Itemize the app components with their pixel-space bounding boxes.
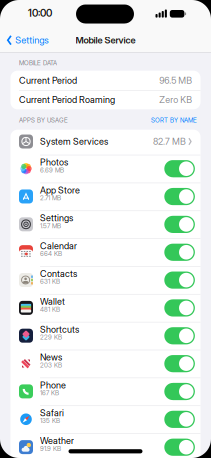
- staticText: Shortcuts: [40, 324, 79, 335]
- button[interactable]: S O R T B Y N A M E: [107, 115, 197, 125]
- staticText: Settings: [40, 212, 73, 223]
- staticText: 167 KB: [40, 389, 59, 397]
- button[interactable]: Settings: [164, 216, 195, 233]
- button[interactable]: Safari: [164, 411, 195, 428]
- button[interactable]: Calendar: [164, 244, 195, 261]
- staticText: 664 KB: [40, 250, 62, 257]
- staticText: 229 KB: [40, 333, 62, 341]
- staticText: Weather: [40, 435, 74, 446]
- staticText: 2.71 MB: [40, 194, 61, 202]
- staticText: 96.5 MB: [159, 75, 192, 86]
- staticText: 10:00: [28, 7, 52, 19]
- staticText: News: [40, 352, 62, 363]
- button[interactable]: News: [164, 355, 195, 372]
- staticText: Calendar: [40, 240, 77, 251]
- staticText: Photos: [40, 157, 68, 168]
- staticText: 203 KB: [40, 361, 62, 369]
- button[interactable]: Phone: [164, 383, 195, 400]
- staticText: App Store: [40, 185, 80, 196]
- staticText: 82.7 MB: [153, 136, 186, 147]
- staticText: 481 KB: [40, 305, 60, 313]
- button[interactable]: System Services: [10, 130, 200, 155]
- staticText: Mobile Service: [75, 35, 135, 46]
- staticText: Contacts: [40, 268, 77, 279]
- staticText: MOBILE DATA: [19, 59, 57, 67]
- button[interactable]: Back to Settings: [6, 31, 58, 49]
- button[interactable]: App Store: [164, 188, 195, 205]
- staticText: 1.57 MB: [40, 222, 61, 230]
- staticText: S O R T B Y N A M E: [151, 116, 197, 124]
- button[interactable]: Wallet: [164, 299, 195, 316]
- staticText: System Services: [40, 136, 108, 147]
- staticText: Wallet: [40, 296, 65, 307]
- button[interactable]: Photos: [164, 160, 195, 177]
- staticText: APPS BY USAGE: [19, 116, 68, 124]
- staticText: Current Period Roaming: [19, 94, 115, 105]
- button[interactable]: Contacts: [164, 271, 195, 289]
- staticText: Phone: [40, 380, 66, 391]
- staticText: 135 KB: [40, 417, 60, 425]
- staticText: Zero KB: [159, 94, 192, 105]
- staticText: 631 KB: [40, 278, 60, 285]
- staticText: 91.9 KB: [40, 445, 61, 452]
- staticText: Settings: [15, 34, 48, 46]
- staticText: Current Period: [19, 75, 77, 86]
- button[interactable]: Shortcuts: [164, 327, 195, 344]
- staticText: 6.69 MB: [40, 166, 64, 174]
- staticText: Safari: [40, 407, 64, 418]
- button[interactable]: Weather: [164, 439, 195, 456]
